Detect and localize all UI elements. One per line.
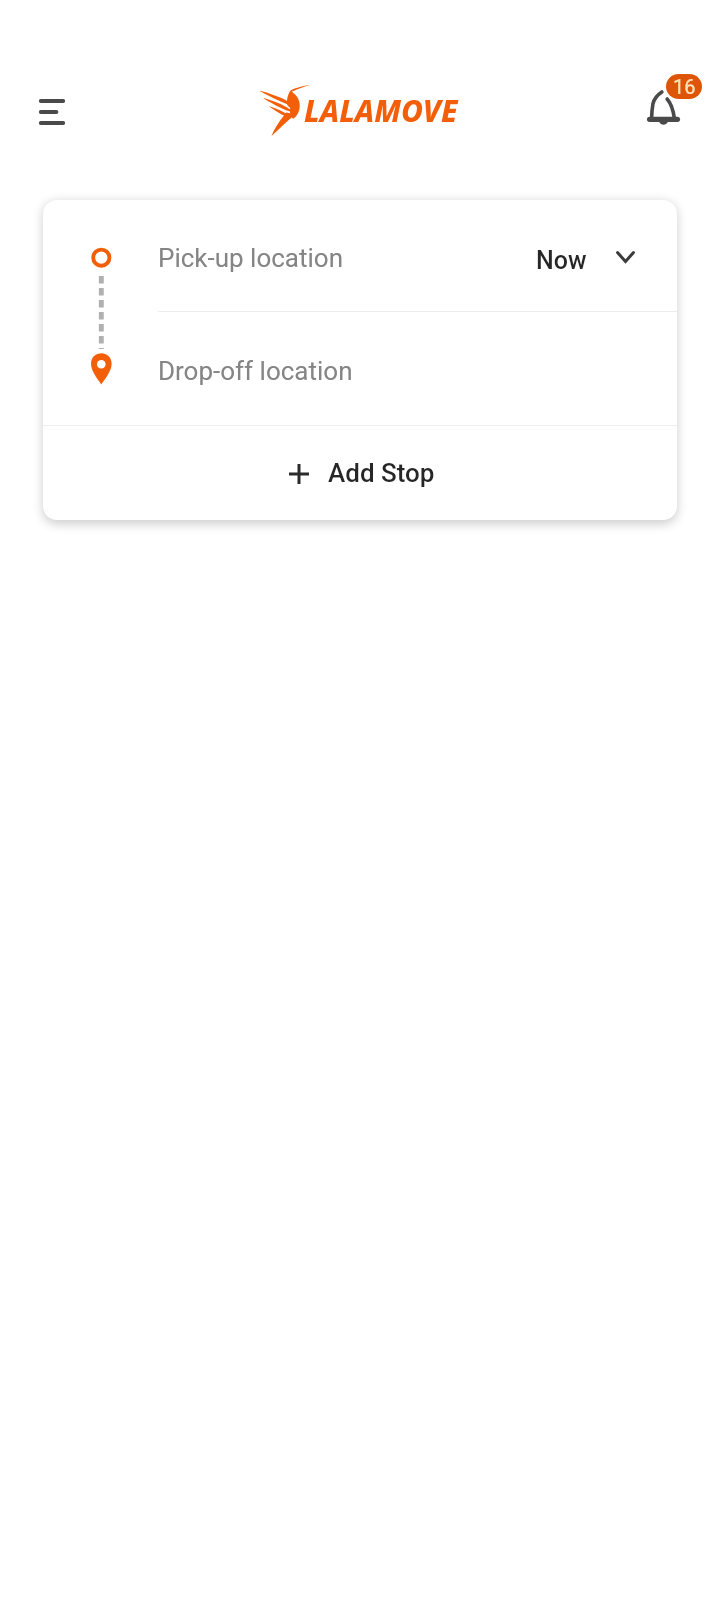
- staticText: Add Stop: [328, 458, 435, 488]
- button[interactable]: Add Stop: [43, 426, 677, 520]
- staticText: 16: [673, 75, 696, 98]
- staticText: LALAMOVE: [304, 90, 458, 131]
- staticText: Drop-off location: [158, 356, 353, 386]
- staticText: Now: [536, 246, 587, 275]
- button[interactable]: Notifications: [636, 68, 710, 150]
- button[interactable]: Pick-up location: [43, 200, 677, 311]
- button[interactable]: Menu: [30, 90, 74, 134]
- staticText: Pick-up location: [158, 243, 343, 273]
- button[interactable]: Drop-off location: [43, 312, 677, 425]
- button[interactable]: Now: [536, 231, 635, 291]
